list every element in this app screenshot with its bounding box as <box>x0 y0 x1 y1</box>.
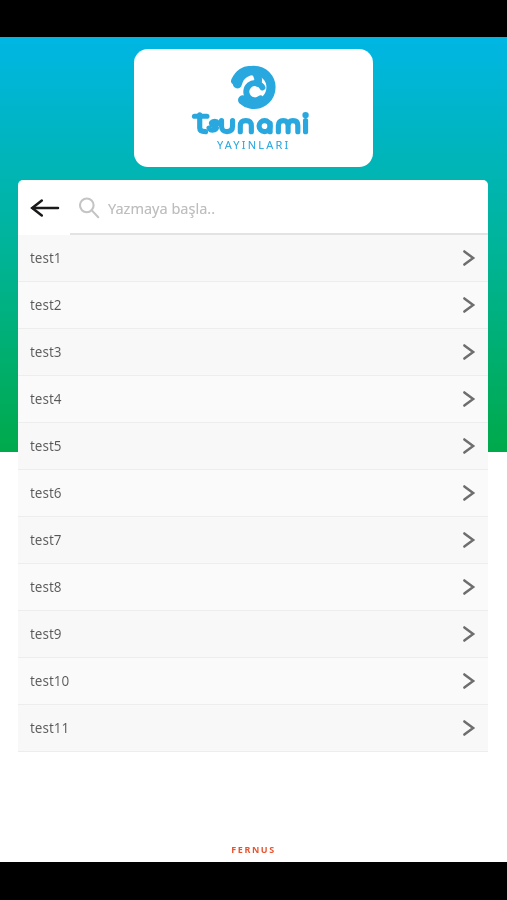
button[interactable]: test11 <box>18 705 488 751</box>
other: Open test7 <box>448 517 488 563</box>
staticText: YAYINLARI <box>217 137 291 152</box>
other: Open test3 <box>448 329 488 375</box>
button[interactable]: test9 <box>18 611 488 657</box>
other: Open test9 <box>448 611 488 657</box>
staticText: test4 <box>30 390 62 408</box>
button[interactable]: test7 <box>18 517 488 563</box>
staticText: test5 <box>30 437 62 455</box>
staticText: test6 <box>30 484 62 502</box>
other: Open test5 <box>448 423 488 469</box>
button[interactable]: test6 <box>18 470 488 516</box>
button[interactable]: test10 <box>18 658 488 704</box>
other: Open test6 <box>448 470 488 516</box>
button[interactable]: Tsunami logo <box>134 49 373 167</box>
button[interactable]: test8 <box>18 564 488 610</box>
staticText: test3 <box>30 343 62 361</box>
staticText: test1 <box>30 249 62 267</box>
staticText: test11 <box>30 719 70 737</box>
staticText: test10 <box>30 672 70 690</box>
staticText: test9 <box>30 625 62 643</box>
staticText: FERNUS <box>231 843 276 855</box>
other: Open test10 <box>448 658 488 704</box>
staticText: Yazmaya başla.. <box>108 198 216 218</box>
other: Open test8 <box>448 564 488 610</box>
staticText: test7 <box>30 531 62 549</box>
other: Tsunami logo <box>231 64 277 108</box>
button[interactable]: test5 <box>18 423 488 469</box>
button[interactable]: test3 <box>18 329 488 375</box>
button[interactable]: Back <box>18 180 70 235</box>
other: Open test1 <box>448 235 488 281</box>
staticText: test8 <box>30 578 62 596</box>
button[interactable]: test1 <box>18 235 488 281</box>
button[interactable]: test4 <box>18 376 488 422</box>
button[interactable]: test2 <box>18 282 488 328</box>
staticText: test2 <box>30 296 62 314</box>
other: Search <box>70 180 108 235</box>
other: Open test11 <box>448 705 488 751</box>
other: Open test4 <box>448 376 488 422</box>
other: Open test2 <box>448 282 488 328</box>
